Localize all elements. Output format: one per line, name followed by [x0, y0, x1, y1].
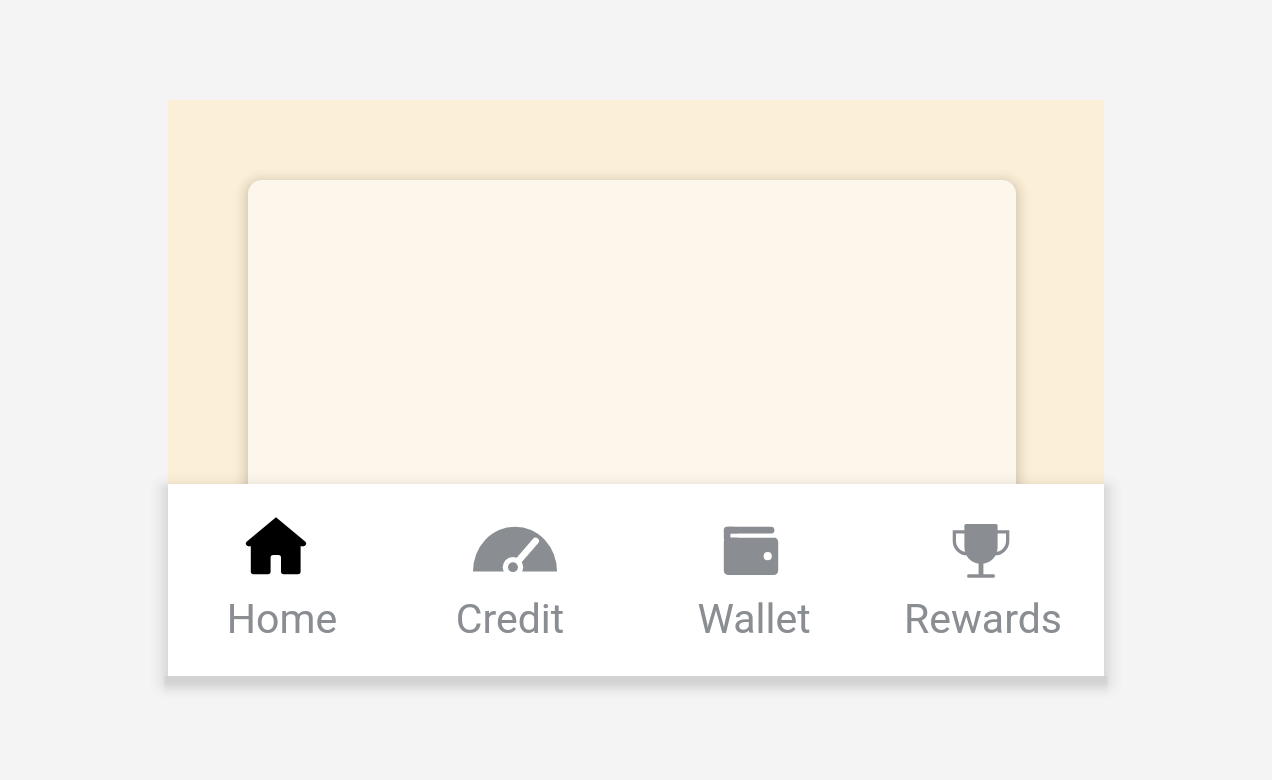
other: Wallet [701, 510, 801, 586]
staticText: Wallet [644, 595, 864, 643]
button[interactable]: Rewards [870, 484, 1104, 676]
other: Credit [465, 510, 565, 586]
button[interactable]: Wallet [636, 484, 870, 676]
staticText: Credit [400, 595, 620, 643]
staticText: Rewards [873, 595, 1093, 643]
button[interactable]: Credit [402, 484, 636, 676]
other: Home [226, 510, 326, 586]
button[interactable]: Home [168, 484, 402, 676]
staticText: Home [172, 595, 392, 643]
other: Rewards [931, 510, 1031, 586]
